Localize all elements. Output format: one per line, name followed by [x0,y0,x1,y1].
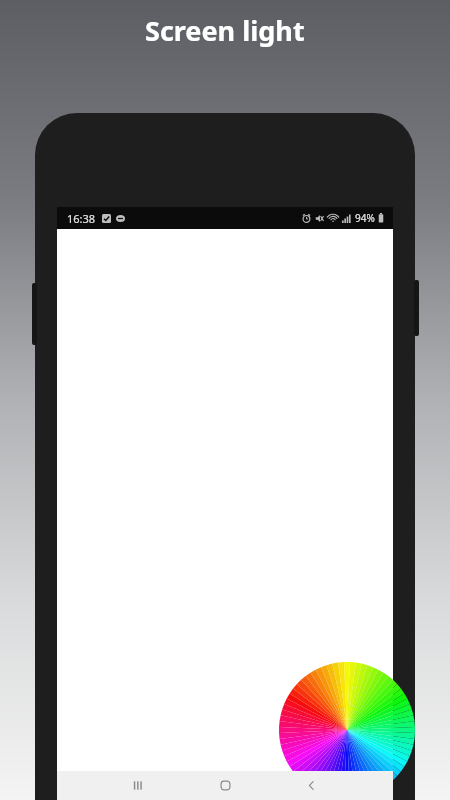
staticText: Screen light [145,12,305,49]
button[interactable]: Home [203,771,247,800]
button[interactable]: Recent apps [115,771,159,800]
staticText: 16:38 [67,211,96,226]
button[interactable]: Color palette [330,713,364,747]
staticText: 94% [355,211,375,225]
button[interactable]: Back [289,771,333,800]
